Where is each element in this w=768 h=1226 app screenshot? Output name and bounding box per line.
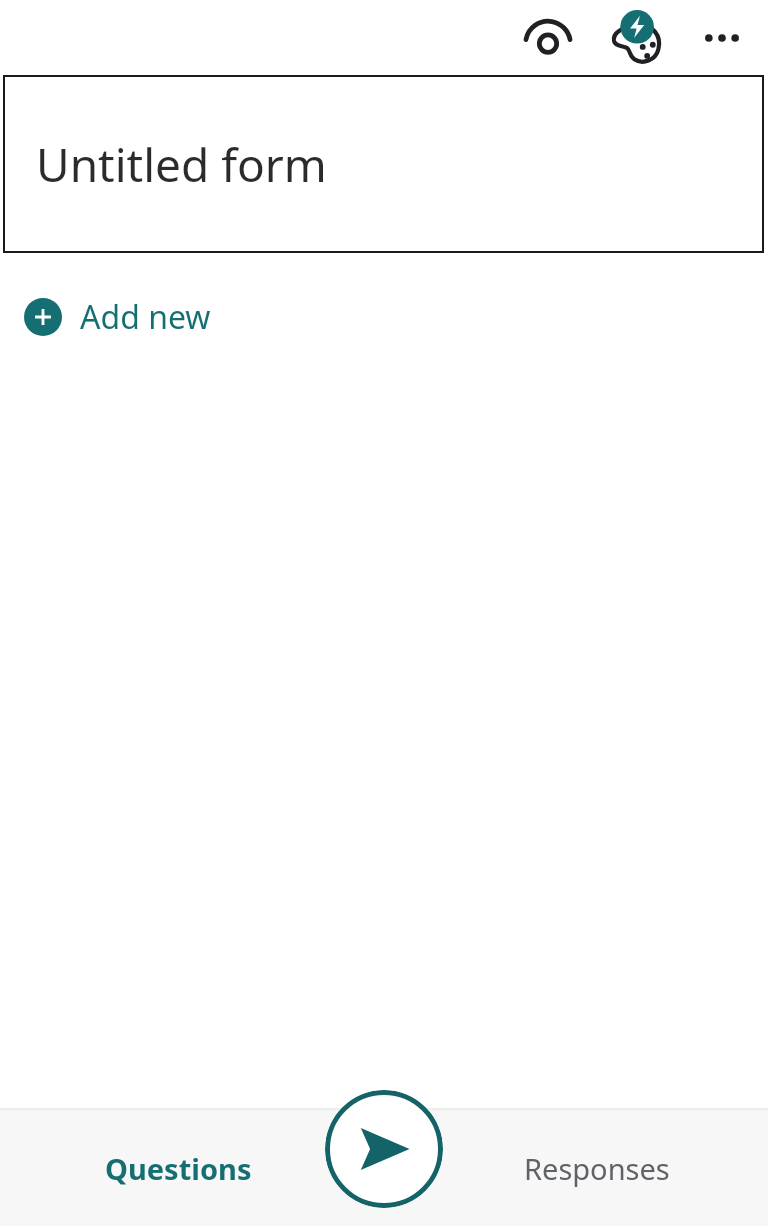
- button[interactable]: Preview: [512, 2, 584, 74]
- button[interactable]: Untitled form: [3, 75, 764, 253]
- button[interactable]: Responses: [384, 1110, 768, 1226]
- button[interactable]: More options: [686, 2, 758, 74]
- staticText: Add new: [80, 295, 211, 339]
- button[interactable]: Customize theme: [600, 2, 672, 74]
- staticText: Responses: [524, 1149, 670, 1188]
- staticText: Questions: [105, 1149, 252, 1188]
- button[interactable]: Send form: [325, 1090, 443, 1208]
- button[interactable]: Questions: [0, 1110, 384, 1226]
- staticText: Untitled form: [36, 133, 327, 196]
- button[interactable]: Add new: [24, 289, 229, 345]
